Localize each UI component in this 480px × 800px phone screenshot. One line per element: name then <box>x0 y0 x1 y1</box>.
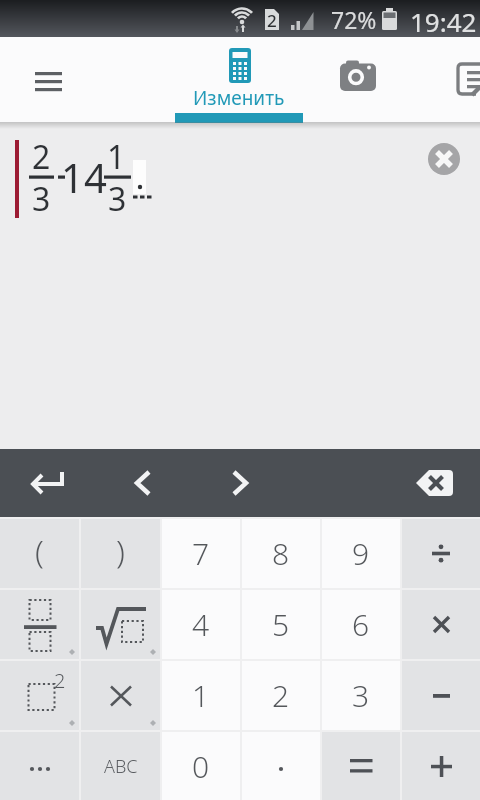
button[interactable]: 8 <box>242 519 320 588</box>
button[interactable]: 3 <box>322 661 400 730</box>
staticText: 3 <box>352 675 370 716</box>
button[interactable]: 2 <box>242 661 320 730</box>
staticText: 14 <box>61 150 107 204</box>
button[interactable]: Изменить <box>168 37 310 122</box>
staticText: ) <box>116 529 125 573</box>
button[interactable] <box>18 459 78 507</box>
button[interactable]: 4 <box>162 590 240 659</box>
button[interactable]: 9 <box>322 519 400 588</box>
staticText: ABC <box>104 754 138 779</box>
button[interactable]: 5 <box>242 590 320 659</box>
button[interactable] <box>446 51 480 103</box>
button[interactable]: 6 <box>322 590 400 659</box>
button[interactable] <box>216 459 264 507</box>
button[interactable]: 7 <box>162 519 240 588</box>
button[interactable]: ( <box>0 519 79 588</box>
button[interactable] <box>0 590 79 659</box>
staticText: 2 <box>272 675 290 716</box>
button[interactable] <box>402 661 480 730</box>
button[interactable] <box>402 519 480 588</box>
button[interactable] <box>242 732 320 800</box>
staticText: 2 <box>32 135 51 179</box>
staticText: Изменить <box>193 85 285 111</box>
staticText: 8 <box>272 533 290 574</box>
staticText: ( <box>35 529 44 573</box>
staticText: 3 <box>108 177 127 221</box>
button[interactable] <box>402 590 480 659</box>
button[interactable]: ABC <box>81 732 160 800</box>
staticText: 5 <box>272 604 290 645</box>
staticText: 0 <box>192 746 210 787</box>
staticText: 2 <box>267 9 277 32</box>
button[interactable] <box>428 143 460 175</box>
button[interactable] <box>81 590 160 659</box>
staticText: 1 <box>107 135 126 179</box>
staticText: 9 <box>352 533 370 574</box>
button[interactable] <box>402 732 480 800</box>
button[interactable]: ) <box>81 519 160 588</box>
button[interactable] <box>322 732 400 800</box>
staticText: 2 <box>54 667 66 694</box>
staticText: 19:42 <box>410 4 477 34</box>
staticText: 7 <box>192 533 210 574</box>
button[interactable]: 1 <box>162 661 240 730</box>
button[interactable] <box>0 732 79 800</box>
button[interactable] <box>334 51 382 99</box>
button[interactable]: 2 <box>0 661 79 730</box>
staticText: 4 <box>192 604 210 645</box>
staticText: 72% <box>331 4 377 34</box>
button[interactable] <box>119 459 167 507</box>
button[interactable] <box>81 661 160 730</box>
staticText: 1 <box>192 675 210 716</box>
button[interactable] <box>23 58 75 106</box>
button[interactable]: 0 <box>162 732 240 800</box>
staticText: 6 <box>352 604 370 645</box>
staticText: 3 <box>32 177 51 221</box>
button[interactable] <box>408 459 460 507</box>
